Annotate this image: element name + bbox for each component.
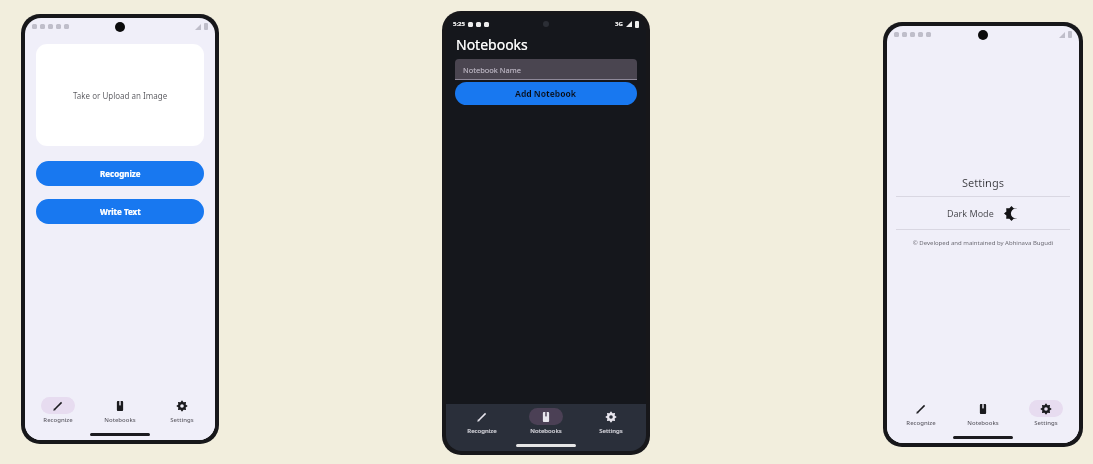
staticText: Write Text (100, 206, 141, 217)
button[interactable]: Recognize (29, 397, 87, 424)
staticText: Settings (170, 416, 194, 424)
button[interactable]: Take or Upload an Image (36, 44, 204, 146)
button[interactable]: Notebooks (954, 400, 1012, 427)
staticText: Notebooks (456, 35, 528, 54)
staticText: Recognize (467, 427, 497, 435)
staticText: Notebooks (530, 427, 562, 435)
button[interactable]: Add Notebook (455, 82, 637, 105)
staticText: Recognize (43, 416, 73, 424)
staticText: Take or Upload an Image (73, 90, 168, 101)
button[interactable]: Settings (1017, 400, 1075, 427)
button[interactable]: Notebooks (517, 408, 575, 435)
staticText: Dark Mode (947, 207, 994, 219)
staticText: Recognize (906, 419, 936, 427)
button[interactable]: Recognize (453, 408, 511, 435)
button[interactable]: Recognize (892, 400, 950, 427)
staticText: Notebooks (967, 419, 999, 427)
staticText: Notebook Name (463, 65, 521, 75)
staticText: © Developed and maintained by Abhinava B… (887, 239, 1079, 247)
button[interactable]: Notebook Name (455, 59, 637, 80)
staticText: Notebooks (104, 416, 136, 424)
button[interactable]: Toggle dark mode (1003, 205, 1020, 222)
staticText: Settings (599, 427, 623, 435)
staticText: Recognize (100, 168, 141, 179)
staticText: 3G (615, 20, 623, 28)
button[interactable]: Recognize (36, 161, 204, 186)
staticText: Settings (1034, 419, 1058, 427)
button[interactable]: Settings (582, 408, 640, 435)
staticText: Settings (887, 175, 1079, 190)
staticText: Add Notebook (515, 88, 577, 100)
button[interactable]: Dark Mode (887, 197, 1079, 229)
staticText: 5:25 (453, 20, 465, 28)
button[interactable]: Settings (153, 397, 211, 424)
button[interactable]: Notebooks (91, 397, 149, 424)
button[interactable]: Write Text (36, 199, 204, 224)
